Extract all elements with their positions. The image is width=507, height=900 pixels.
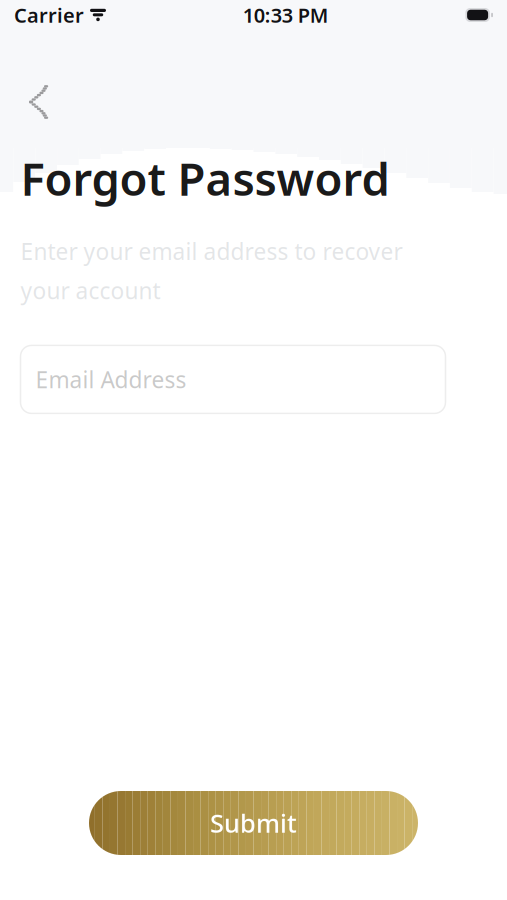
staticText: Forgot Password bbox=[20, 148, 389, 208]
staticText: Email Address bbox=[35, 364, 186, 394]
button[interactable]: Submit bbox=[89, 791, 418, 855]
button[interactable]: Back bbox=[13, 68, 69, 136]
staticText: Enter your email address to recover bbox=[20, 236, 402, 266]
button[interactable]: Email Address bbox=[20, 345, 445, 413]
staticText: your account bbox=[20, 275, 160, 305]
staticText: Carrier bbox=[14, 2, 84, 28]
staticText: Submit bbox=[210, 806, 297, 840]
staticText: 10:33 PM bbox=[243, 2, 329, 28]
